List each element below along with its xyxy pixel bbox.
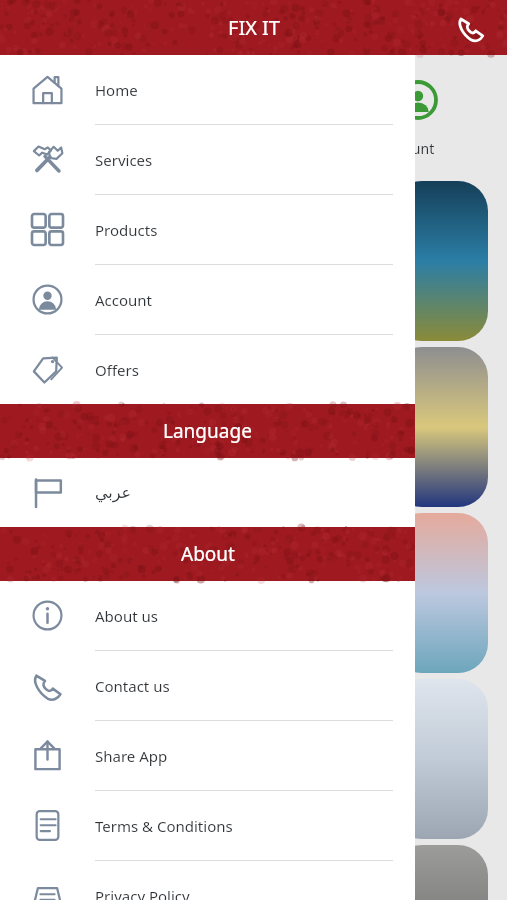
staticText: Privacy Policy <box>95 886 190 900</box>
button[interactable]: Contact us <box>0 651 415 721</box>
staticText: Products <box>95 220 158 240</box>
button[interactable]: Services <box>0 125 415 195</box>
button[interactable]: Home <box>0 55 415 125</box>
staticText: FIX IT <box>228 14 280 41</box>
button[interactable]: Terms & Conditions <box>0 791 415 861</box>
staticText: About <box>181 541 235 567</box>
button[interactable]: Call <box>447 4 495 52</box>
staticText: Account <box>381 139 435 158</box>
staticText: Home <box>95 80 138 100</box>
staticText: About us <box>95 606 158 626</box>
button[interactable]: Share App <box>0 721 415 791</box>
staticText: Services <box>95 150 153 170</box>
staticText: Language <box>163 418 252 444</box>
staticText: Contact us <box>95 676 170 696</box>
button[interactable]: Account <box>0 265 415 335</box>
staticText: Account <box>95 290 153 310</box>
button[interactable]: عربي <box>0 458 415 527</box>
staticText: Terms & Conditions <box>95 816 233 836</box>
button[interactable]: Products <box>0 195 415 265</box>
staticText: Share App <box>95 746 168 766</box>
button[interactable]: Offers <box>0 335 415 404</box>
button[interactable]: Privacy Policy <box>0 861 415 900</box>
staticText: Offers <box>95 360 139 380</box>
button[interactable]: About us <box>0 581 415 651</box>
staticText: عربي <box>95 483 132 502</box>
